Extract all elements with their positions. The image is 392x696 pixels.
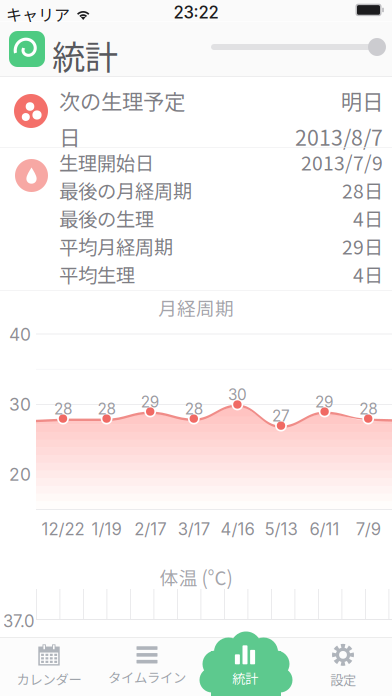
staticText: 7/9 — [356, 519, 381, 539]
staticText: 12/22 — [41, 519, 84, 539]
staticText: 設定 — [330, 670, 356, 689]
staticText: 20 — [9, 464, 31, 485]
button[interactable]: カレンダー — [0, 637, 98, 696]
staticText: 27 — [272, 407, 290, 425]
staticText: 28日 — [342, 176, 383, 204]
staticText: 2013/7/9 — [301, 148, 383, 176]
staticText: タイムライン — [108, 667, 186, 687]
staticText: 最後の生理 — [59, 204, 154, 232]
staticText: 29日 — [342, 232, 383, 260]
staticText: 28 — [98, 400, 116, 418]
staticText: 40 — [9, 324, 31, 345]
staticText: 平均生理 — [59, 260, 135, 288]
staticText: 37.0 — [3, 611, 35, 631]
staticText: カレンダー — [16, 669, 81, 689]
button[interactable]: タイムライン — [98, 637, 196, 696]
staticText: 最後の月経周期 — [59, 176, 192, 204]
staticText: キャリア — [6, 2, 70, 26]
staticText: 4日 — [353, 204, 383, 232]
staticText: 4日 — [353, 260, 383, 288]
staticText: 30 — [9, 394, 31, 415]
staticText: 2/17 — [134, 519, 166, 539]
staticText: 生理開始日 — [59, 148, 154, 176]
staticText: 2013/8/7 — [295, 121, 383, 152]
staticText: 体温 (°C) — [159, 563, 232, 590]
staticText: 1/19 — [92, 519, 122, 539]
staticText: 28 — [54, 400, 72, 418]
staticText: 月経周期 — [158, 294, 234, 321]
staticText: 4/16 — [220, 519, 254, 539]
button[interactable]: 設定 — [294, 637, 392, 696]
staticText: 3/17 — [178, 519, 210, 539]
staticText: 次の生理予定 — [59, 85, 185, 116]
staticText: 統計 — [52, 31, 118, 79]
staticText: 5/13 — [264, 519, 297, 539]
staticText: 28 — [359, 400, 377, 418]
staticText: 30 — [228, 385, 247, 404]
staticText: 28 — [185, 400, 203, 418]
staticText: 29 — [141, 393, 160, 411]
button[interactable]: 統計 — [196, 637, 294, 696]
staticText: 日 — [59, 121, 80, 152]
staticText: 29 — [315, 393, 334, 411]
staticText: 明日 — [341, 85, 383, 116]
staticText: 平均月経周期 — [59, 232, 173, 260]
staticText: 6/11 — [310, 519, 340, 539]
staticText: 統計 — [232, 668, 258, 688]
staticText: 23:22 — [173, 2, 218, 23]
